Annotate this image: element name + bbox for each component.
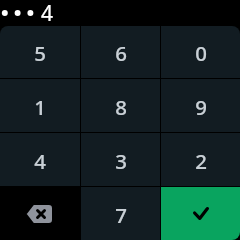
staticText: 2 xyxy=(195,147,207,175)
button[interactable]: 6 xyxy=(81,26,160,78)
button[interactable]: 8 xyxy=(81,79,160,132)
staticText: 1 xyxy=(34,93,46,121)
staticText: 6 xyxy=(115,39,127,67)
staticText: 9 xyxy=(195,93,207,121)
button[interactable]: 4 xyxy=(0,133,80,186)
button[interactable]: 5 xyxy=(0,26,80,78)
staticText: 8 xyxy=(115,93,127,121)
button[interactable]: 3 xyxy=(81,133,160,186)
button[interactable]: Backspace xyxy=(0,187,80,240)
button[interactable]: 0 xyxy=(161,26,240,78)
button[interactable]: 9 xyxy=(161,79,240,132)
staticText: 0 xyxy=(195,39,207,67)
button[interactable]: Confirm xyxy=(161,187,240,240)
staticText: 7 xyxy=(115,201,127,229)
button[interactable]: 1 xyxy=(0,79,80,132)
button[interactable]: 2 xyxy=(161,133,240,186)
staticText: 5 xyxy=(34,39,46,67)
button[interactable]: 7 xyxy=(81,187,160,240)
staticText: 4 xyxy=(34,147,46,175)
staticText: 3 xyxy=(115,147,127,175)
staticText: 4 xyxy=(41,0,54,25)
